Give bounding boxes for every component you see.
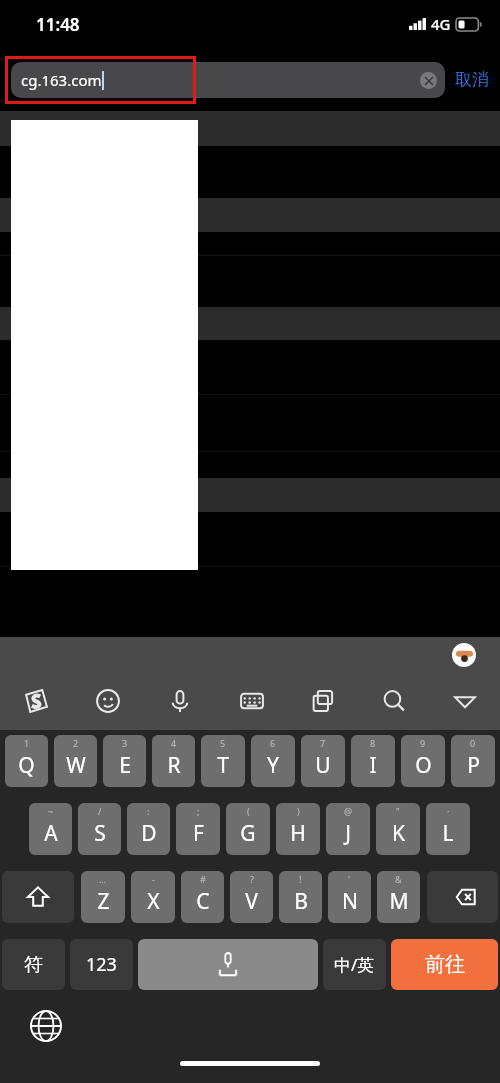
button[interactable]: ' [328,871,371,923]
staticText: 8 [370,737,376,749]
button[interactable]: 中/英 [323,939,386,990]
staticText: 4 [171,737,177,749]
button[interactable]: 8 [351,735,395,787]
button[interactable]: Change keyboard [30,1010,62,1042]
button[interactable]: ? [230,871,273,923]
staticText: 4G [431,14,451,34]
staticText: … [99,873,107,885]
staticText: 2 [73,737,79,749]
button[interactable]: : [127,803,170,855]
staticText: 9 [420,737,426,749]
button[interactable]: & [377,871,420,923]
button[interactable]: ~ [29,803,72,855]
button[interactable]: Sogou [0,675,72,727]
button[interactable]: 0 [451,735,495,787]
button[interactable]: Voice input [144,675,216,727]
staticText: 5 [220,737,226,749]
button[interactable]: - [131,871,175,923]
button[interactable]: 前往 [391,939,498,990]
staticText: 前往 [425,952,465,977]
button[interactable]: 符 [2,939,65,990]
staticText: ( [247,805,250,817]
button[interactable]: Translate [287,675,358,727]
button[interactable]: · [426,803,470,855]
button[interactable]: 1 [5,735,48,787]
staticText: D [141,819,157,848]
button[interactable]: 2 [54,735,97,787]
button[interactable]: 9 [401,735,445,787]
staticText: H [290,819,306,848]
button[interactable]: ( [226,803,270,855]
staticText: ? [250,873,254,885]
staticText: E [119,751,131,780]
button[interactable]: # [181,871,224,923]
staticText: @ [344,805,353,817]
button[interactable]: Keyboard [216,675,287,727]
button[interactable]: Hide keyboard [429,675,500,727]
staticText: G [240,819,256,848]
staticText: 中/英 [334,953,375,976]
staticText: 0 [470,737,476,749]
staticText: V [245,887,258,916]
button[interactable]: Search [358,675,429,727]
staticText: K [392,819,405,848]
staticText: · [447,805,450,817]
staticText: X [147,887,160,916]
button[interactable]: 123 [70,939,133,990]
button[interactable]: 3 [103,735,146,787]
staticText: ; [197,805,200,817]
staticText: W [66,751,86,780]
staticText: S [94,819,106,848]
button[interactable]: Emoji [72,675,144,727]
button[interactable]: ! [279,871,322,923]
button[interactable]: @ [326,803,370,855]
staticText: O [415,751,432,780]
staticText: 3 [122,737,128,749]
button[interactable]: 5 [201,735,245,787]
button[interactable]: ) [276,803,320,855]
button[interactable]: ; [176,803,220,855]
staticText: Z [97,887,110,916]
staticText: - [152,873,155,885]
staticText: ! [299,873,302,885]
staticText: cg.163.com [21,70,102,90]
staticText: : [147,805,150,817]
staticText: U [315,751,331,780]
staticText: 6 [270,737,276,749]
staticText: N [342,887,358,916]
staticText: L [442,819,454,848]
staticText: R [167,751,181,780]
button[interactable]: 6 [251,735,295,787]
staticText: M [389,887,409,916]
button[interactable]: Account [452,643,476,667]
staticText: ~ [48,805,54,817]
staticText: ' [348,873,351,885]
staticText: 123 [86,952,117,977]
staticText: I [369,751,377,780]
button[interactable]: Backspace [427,871,498,923]
staticText: " [396,805,400,817]
staticText: P [467,751,480,780]
staticText: # [200,873,206,885]
staticText: Y [267,751,279,780]
button[interactable]: Space [138,939,318,990]
button[interactable]: cg.163.com [11,62,445,98]
staticText: 符 [24,953,43,977]
staticText: Q [18,751,35,780]
staticText: ) [297,805,300,817]
button[interactable]: 取消 [455,69,489,90]
staticText: T [217,751,229,780]
button[interactable]: … [81,871,125,923]
button[interactable]: / [78,803,121,855]
button[interactable]: Clear [420,72,437,89]
staticText: 11:48 [36,13,80,36]
button[interactable]: Shift [2,871,74,923]
staticText: 取消 [455,69,489,90]
staticText: J [345,819,351,848]
button[interactable]: " [376,803,420,855]
staticText: / [98,805,102,817]
button[interactable]: 7 [301,735,345,787]
button[interactable]: 4 [152,735,195,787]
staticText: B [294,887,308,916]
staticText: C [196,887,210,916]
